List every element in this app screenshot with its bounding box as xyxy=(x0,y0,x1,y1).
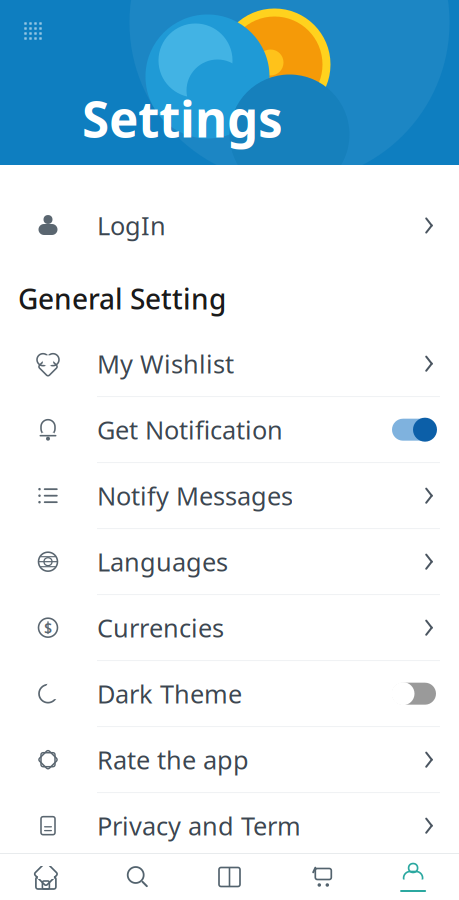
staticText: Settings xyxy=(82,85,283,151)
staticText: Currencies xyxy=(97,611,224,644)
staticText: Privacy and Term xyxy=(97,809,301,842)
staticText: LogIn xyxy=(97,209,166,242)
button[interactable]: LogIn xyxy=(0,193,459,258)
button[interactable]: Search xyxy=(92,863,184,891)
button[interactable]: Notify Messages xyxy=(0,463,459,529)
button[interactable]: Cart xyxy=(275,863,367,891)
staticText: General Setting xyxy=(18,280,226,317)
button[interactable]: Menu xyxy=(18,16,48,46)
staticText: My Wishlist xyxy=(97,347,234,380)
button[interactable]: Get Notification xyxy=(0,397,459,463)
staticText: Notify Messages xyxy=(97,479,293,512)
button[interactable]: Dark Theme xyxy=(0,661,459,727)
button[interactable]: Languages xyxy=(0,529,459,595)
staticText: Get Notification xyxy=(97,413,283,446)
staticText: S xyxy=(44,618,52,637)
staticText: Languages xyxy=(97,545,228,578)
button[interactable]: Catalog xyxy=(184,863,275,891)
button[interactable]: Rate the app xyxy=(0,727,459,793)
button[interactable]: Account xyxy=(367,862,459,892)
button[interactable]: My Wishlist xyxy=(0,331,459,397)
button[interactable]: Home xyxy=(0,863,92,891)
staticText: Rate the app xyxy=(97,743,249,776)
button[interactable]: S xyxy=(0,595,459,661)
staticText: Dark Theme xyxy=(97,677,242,710)
button[interactable]: Privacy and Term xyxy=(0,793,459,859)
